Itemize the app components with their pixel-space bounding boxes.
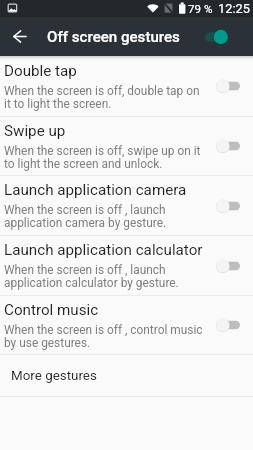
button[interactable]: Off screen gestures toggle: [205, 29, 228, 45]
button[interactable]: Swipe up: [0, 117, 253, 175]
staticText: More gestures: [11, 368, 97, 384]
button[interactable]: Launch application camera: [0, 176, 253, 235]
staticText: When the screen is off, double tap on it…: [4, 84, 205, 111]
staticText: 12:25: [218, 1, 250, 16]
button[interactable]: More gestures: [0, 355, 253, 396]
staticText: When the screen is off , launch applicat…: [4, 263, 205, 290]
staticText: Double tap: [4, 62, 77, 80]
staticText: When the screen is off , control music b…: [4, 323, 205, 350]
button[interactable]: Launch application calculator: [0, 236, 253, 295]
staticText: Launch application camera: [4, 181, 187, 199]
staticText: When the screen is off, swipe up on it t…: [4, 144, 205, 171]
staticText: Control music: [4, 301, 99, 319]
button[interactable]: Control music: [0, 296, 253, 354]
staticText: 79 %: [188, 2, 213, 16]
staticText: Launch application calculator: [4, 241, 203, 259]
staticText: Off screen gestures: [47, 28, 180, 46]
button[interactable]: Back: [0, 17, 30, 56]
staticText: When the screen is off , launch applicat…: [4, 203, 205, 230]
button[interactable]: Double tap: [0, 56, 253, 116]
staticText: Swipe up: [4, 122, 66, 140]
